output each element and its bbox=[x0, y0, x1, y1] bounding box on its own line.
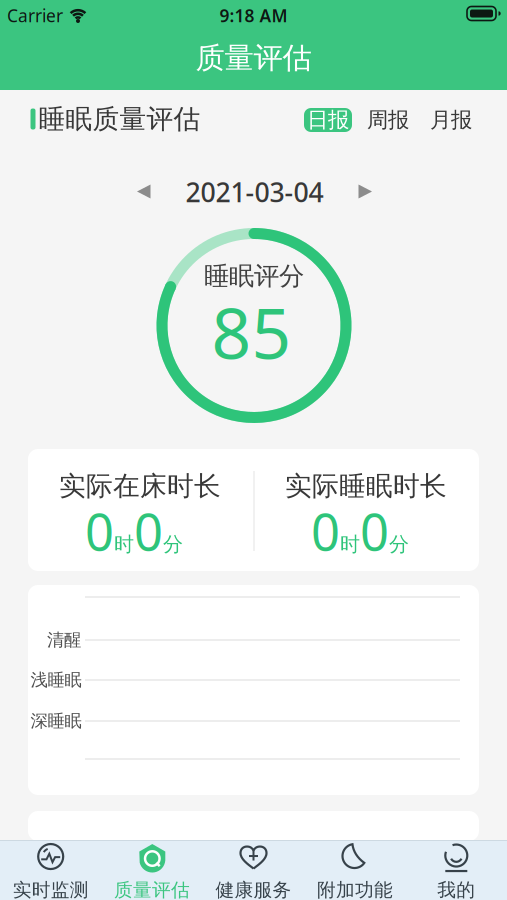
staticText: 0 bbox=[360, 497, 389, 565]
staticText: 健康服务 bbox=[215, 878, 291, 900]
staticText: 周报 bbox=[367, 107, 409, 133]
staticText: Carrier bbox=[7, 4, 63, 27]
staticText: 日报 bbox=[307, 107, 349, 133]
button[interactable]: Next day bbox=[357, 183, 373, 199]
button[interactable]: 健康服务 bbox=[203, 842, 303, 900]
staticText: 0 bbox=[85, 497, 114, 565]
staticText: 睡眠质量评估 bbox=[38, 103, 200, 135]
button[interactable]: Previous day bbox=[136, 183, 152, 199]
button[interactable]: 日报 bbox=[304, 108, 352, 132]
staticText: 实际在床时长 bbox=[59, 470, 221, 502]
button[interactable]: 附加功能 bbox=[305, 842, 405, 900]
staticText: 时 bbox=[340, 532, 360, 557]
button[interactable]: 月报 bbox=[426, 107, 476, 133]
staticText: 质量评估 bbox=[195, 40, 311, 76]
button[interactable]: 质量评估 bbox=[102, 842, 202, 900]
staticText: 分 bbox=[163, 532, 183, 557]
staticText: 9:18 AM bbox=[219, 4, 287, 27]
staticText: 实际睡眠时长 bbox=[285, 470, 447, 502]
button[interactable]: 我的 bbox=[406, 842, 506, 900]
staticText: 清醒 bbox=[47, 629, 81, 651]
staticText: 分 bbox=[389, 532, 409, 557]
staticText: 0 bbox=[134, 497, 163, 565]
staticText: 85 bbox=[211, 286, 291, 378]
staticText: 2021-03-04 bbox=[185, 174, 323, 210]
staticText: 我的 bbox=[437, 878, 475, 900]
button[interactable]: 实时监测 bbox=[1, 842, 101, 900]
staticText: 质量评估 bbox=[114, 878, 190, 900]
staticText: 月报 bbox=[430, 107, 472, 133]
staticText: 附加功能 bbox=[317, 878, 393, 900]
staticText: 睡眠评分 bbox=[204, 260, 304, 291]
staticText: 0 bbox=[311, 497, 340, 565]
staticText: 浅睡眠 bbox=[30, 669, 81, 691]
staticText: 深睡眠 bbox=[30, 710, 81, 732]
staticText: 实时监测 bbox=[13, 878, 89, 900]
button[interactable]: 周报 bbox=[363, 107, 413, 133]
staticText: 时 bbox=[114, 532, 134, 557]
